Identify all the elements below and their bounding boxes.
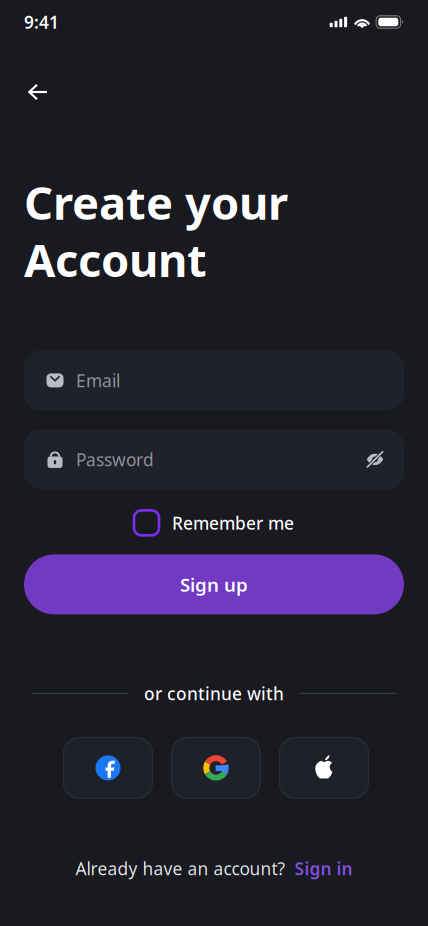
button[interactable]: Sign up: [24, 554, 404, 614]
staticText: Account: [24, 229, 207, 289]
button[interactable]: Continue with Google: [171, 737, 260, 798]
button[interactable]: Remember me: [134, 510, 294, 535]
button[interactable]: Back: [16, 70, 60, 114]
staticText: Create your: [24, 172, 288, 232]
staticText: Password: [76, 448, 154, 471]
staticText: Email: [76, 369, 120, 392]
staticText: or continue with: [144, 682, 284, 705]
button[interactable]: Continue with Apple: [279, 737, 368, 798]
staticText: 9:41: [24, 10, 59, 33]
staticText: Already have an account?: [75, 857, 285, 880]
staticText: Sign up: [180, 572, 248, 597]
staticText: Remember me: [172, 511, 294, 534]
button[interactable]: Sign in: [294, 857, 352, 880]
button[interactable]: Continue with Facebook: [63, 737, 152, 798]
staticText: Sign in: [294, 857, 352, 880]
